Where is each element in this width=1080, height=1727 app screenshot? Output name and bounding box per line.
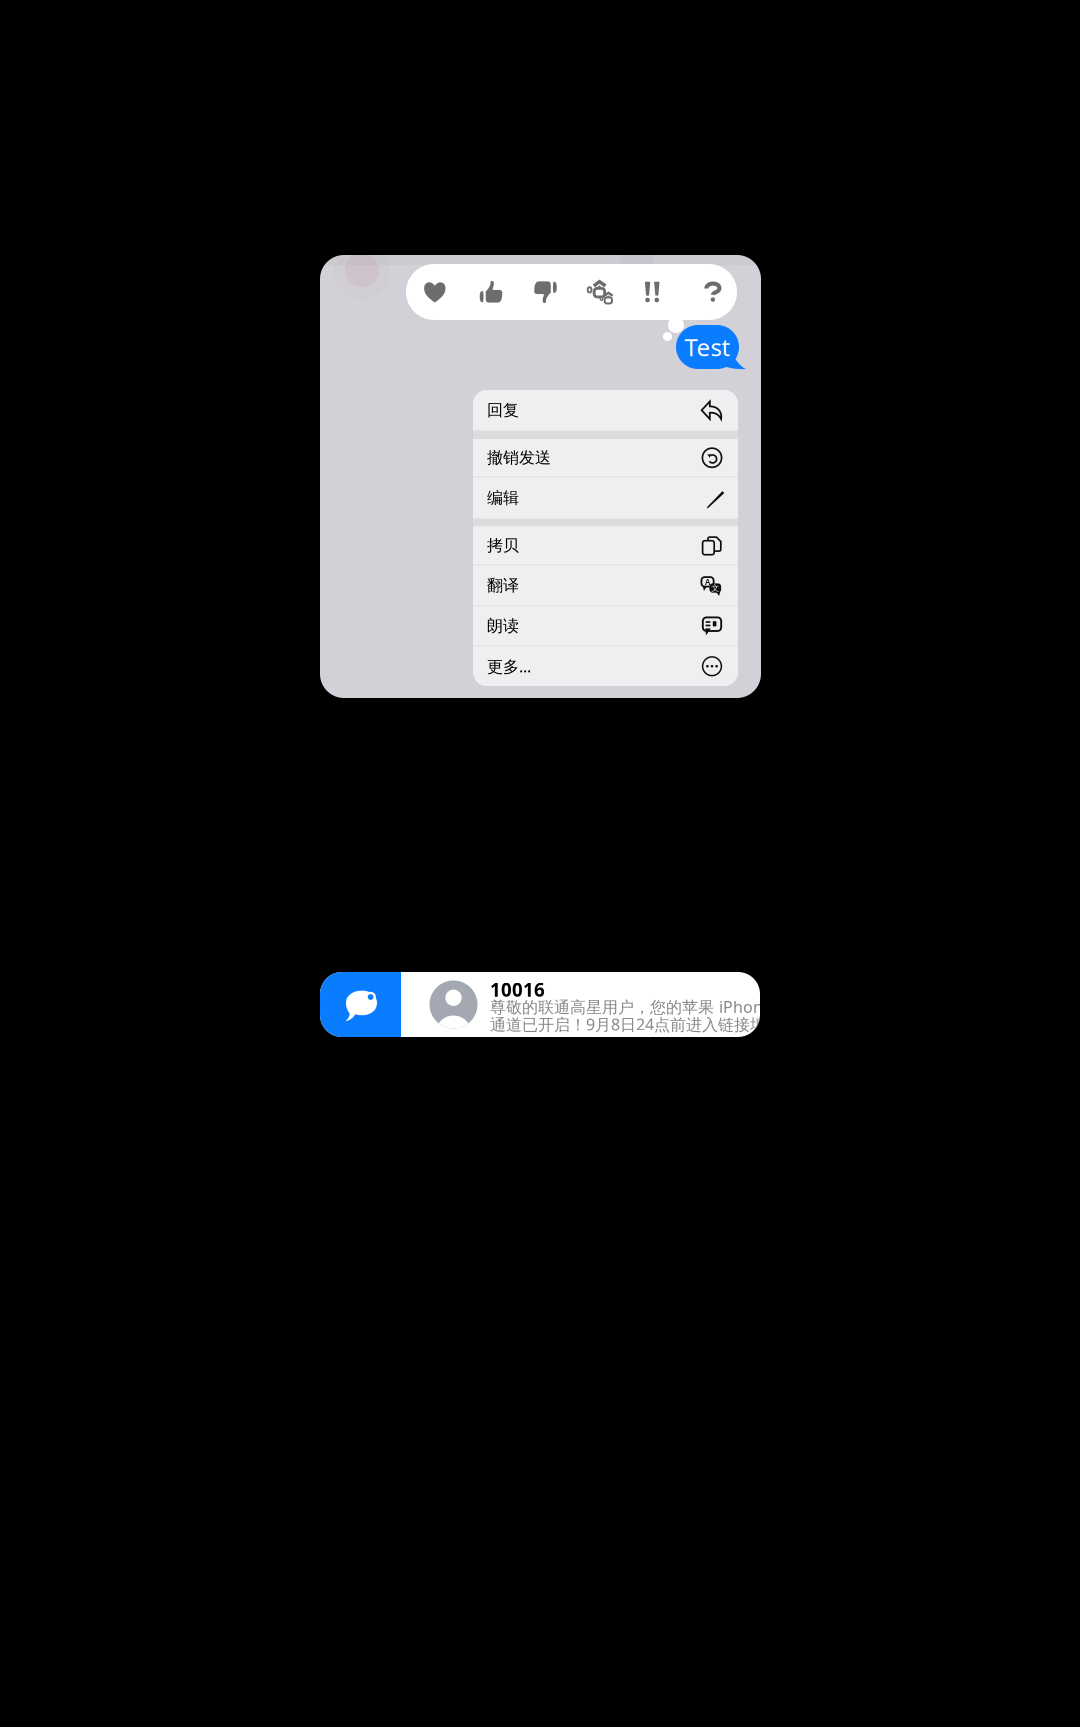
staticText: 编辑 xyxy=(487,488,519,508)
button[interactable]: Love xyxy=(412,264,452,320)
staticText: 10016 xyxy=(490,977,545,1002)
button[interactable]: 更多... xyxy=(473,646,738,686)
button[interactable]: Exclamation xyxy=(632,264,672,320)
button[interactable]: 拷贝 xyxy=(473,526,738,564)
staticText: 撤销发送 xyxy=(487,448,551,468)
button[interactable]: Dislike xyxy=(522,264,562,320)
button[interactable]: 朗读 xyxy=(473,606,738,645)
staticText: 文 xyxy=(711,583,719,593)
staticText: A xyxy=(705,576,710,587)
button[interactable]: 回复 xyxy=(473,390,738,430)
button[interactable]: 翻译 xyxy=(473,565,738,605)
staticText: 拷贝 xyxy=(487,536,519,555)
staticText: 更多... xyxy=(487,656,531,677)
staticText: Test xyxy=(684,331,730,363)
button[interactable]: Question mark xyxy=(691,264,731,320)
staticText: 尊敬的联通高星用户，您的苹果 iPhone 14 新品 xyxy=(490,996,820,1017)
staticText: 朗读 xyxy=(487,616,519,636)
button[interactable]: 10016 xyxy=(320,972,760,1037)
button[interactable]: 撤销发送 xyxy=(473,439,738,476)
button[interactable]: Like xyxy=(468,264,508,320)
button[interactable]: Test xyxy=(676,325,746,369)
button[interactable]: Haha xyxy=(576,264,616,320)
staticText: 回复 xyxy=(487,400,519,420)
staticText: 通道已开启！9月8日24点前进入链接填写预约 xyxy=(490,1014,814,1035)
button[interactable]: 编辑 xyxy=(473,477,738,518)
staticText: 翻译 xyxy=(487,576,519,595)
